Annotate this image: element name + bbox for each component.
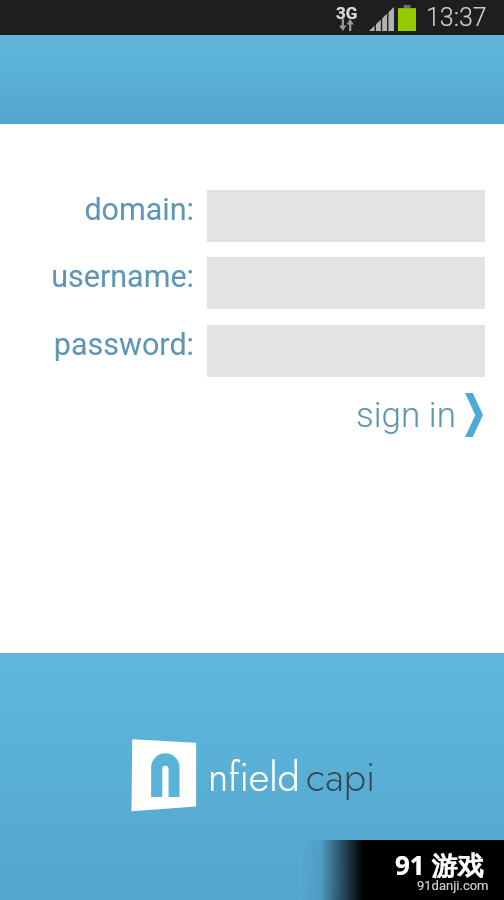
staticText: 91danji.com [417, 878, 489, 893]
staticText: username: [51, 259, 194, 295]
staticText: 3G [336, 3, 358, 23]
staticText: 91 游戏 [395, 847, 484, 883]
staticText: sign in [356, 395, 456, 436]
staticText: password: [53, 327, 194, 363]
staticText: capi [306, 748, 376, 806]
staticText: nfield [208, 748, 300, 806]
staticText: 13:37 [426, 3, 487, 32]
staticText: domain: [84, 192, 194, 228]
button[interactable]: sign in [346, 390, 492, 440]
